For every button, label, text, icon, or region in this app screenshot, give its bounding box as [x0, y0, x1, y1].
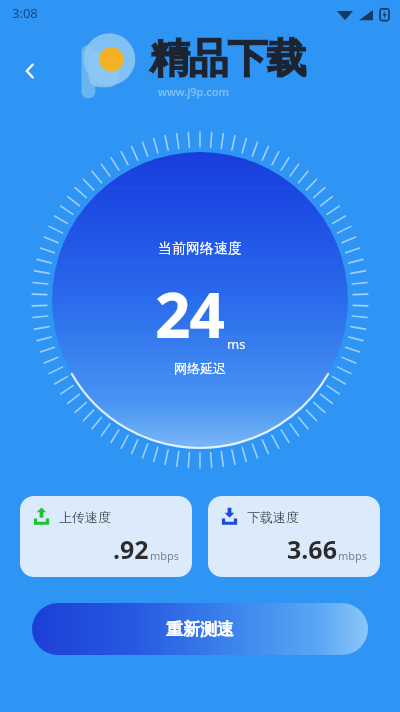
staticText: 当前网络速度: [158, 240, 242, 258]
staticText: mbps: [150, 548, 180, 563]
staticText: 3.66: [287, 532, 337, 566]
staticText: mbps: [338, 548, 368, 563]
button[interactable]: 下载速度: [208, 496, 380, 577]
button[interactable]: Back: [8, 49, 52, 93]
staticText: 3:08: [12, 4, 38, 22]
staticText: 精品下载: [150, 33, 306, 83]
staticText: 24: [155, 272, 224, 356]
staticText: 重新测速: [166, 619, 234, 640]
staticText: 网络延迟: [174, 360, 226, 376]
button[interactable]: 重新测速: [32, 603, 368, 655]
staticText: www.j9p.com: [158, 84, 229, 99]
staticText: 下载速度: [247, 509, 299, 525]
staticText: ms: [227, 335, 246, 353]
staticText: .92: [113, 532, 149, 566]
staticText: 上传速度: [59, 509, 111, 525]
button[interactable]: 上传速度: [20, 496, 192, 577]
